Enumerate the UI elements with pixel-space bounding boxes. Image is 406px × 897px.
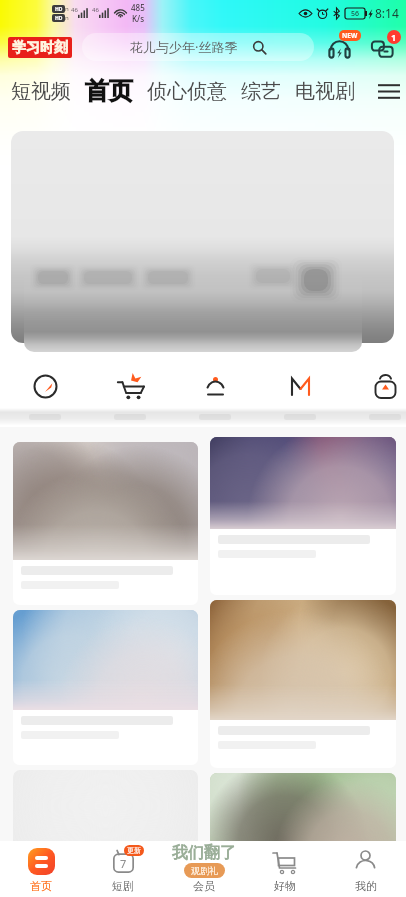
button[interactable]: Listen mode bbox=[321, 31, 357, 63]
button[interactable] bbox=[210, 600, 396, 768]
button[interactable]: Tmall bbox=[279, 365, 321, 407]
button[interactable]: 花儿与少年·丝路季 bbox=[82, 33, 314, 61]
staticText: HD bbox=[55, 6, 63, 13]
button[interactable]: 我的 bbox=[325, 841, 406, 897]
staticText: 花儿与少年·丝路季 bbox=[130, 38, 238, 56]
button[interactable]: 首页 bbox=[0, 841, 82, 897]
staticText: 46 bbox=[71, 6, 78, 14]
staticText: 首页 bbox=[85, 76, 133, 106]
button[interactable]: 好物 bbox=[244, 841, 325, 897]
button[interactable]: Rewards bbox=[364, 365, 406, 407]
button[interactable] bbox=[13, 442, 198, 605]
staticText: 我的 bbox=[355, 879, 377, 893]
button[interactable]: Menu bbox=[374, 76, 404, 106]
staticText: 我们翻了 bbox=[172, 843, 236, 863]
staticText: 短剧 bbox=[112, 879, 134, 893]
button[interactable]: 综艺 bbox=[234, 74, 288, 109]
staticText: 会员 bbox=[193, 879, 215, 893]
button[interactable] bbox=[210, 773, 396, 857]
staticText: 学习时刻 bbox=[12, 39, 68, 57]
button[interactable]: 短视频 bbox=[4, 74, 78, 109]
staticText: HD bbox=[55, 15, 63, 22]
staticText: 首页 bbox=[30, 879, 52, 893]
staticText: NEW bbox=[342, 31, 358, 40]
button[interactable]: 学习时刻 bbox=[8, 35, 74, 59]
button[interactable]: Cart bbox=[109, 365, 151, 407]
staticText: 侦心侦意 bbox=[147, 79, 227, 104]
button[interactable] bbox=[11, 131, 394, 343]
staticText: 7 bbox=[120, 856, 127, 871]
button[interactable] bbox=[13, 610, 198, 765]
staticText: 综艺 bbox=[241, 79, 281, 104]
staticText: 56 bbox=[351, 9, 360, 19]
button[interactable]: 我们翻了 bbox=[163, 841, 244, 897]
staticText: 短视频 bbox=[11, 79, 71, 104]
button[interactable]: Account bbox=[194, 365, 236, 407]
button[interactable]: 首页 bbox=[78, 71, 140, 111]
button[interactable]: Messages bbox=[366, 31, 398, 63]
staticText: 电视剧 bbox=[295, 79, 355, 104]
staticText: n bbox=[65, 14, 69, 22]
staticText: 1 bbox=[391, 31, 397, 43]
button[interactable] bbox=[210, 437, 396, 595]
staticText: 8:14 bbox=[375, 5, 399, 21]
staticText: 46 bbox=[92, 6, 99, 14]
staticText: 更新 bbox=[127, 846, 141, 855]
staticText: 485 bbox=[131, 2, 145, 13]
staticText: 好物 bbox=[274, 879, 296, 893]
staticText: K/s bbox=[132, 13, 145, 24]
button[interactable]: 7 bbox=[82, 841, 163, 897]
button[interactable]: 电视剧 bbox=[288, 74, 362, 109]
button[interactable]: Discover bbox=[24, 365, 66, 407]
staticText: n bbox=[65, 5, 69, 13]
button[interactable]: 侦心侦意 bbox=[140, 74, 234, 109]
staticText: 观剧礼 bbox=[191, 865, 218, 876]
button[interactable] bbox=[13, 770, 198, 890]
